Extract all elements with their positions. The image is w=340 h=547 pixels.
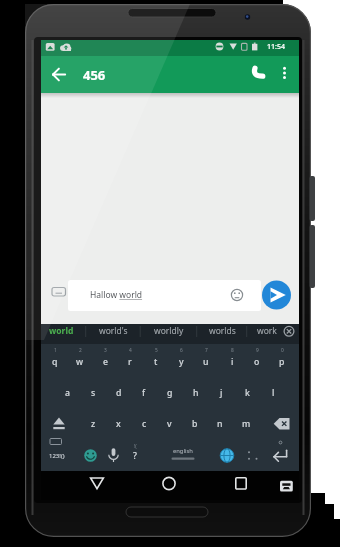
staticText: !( [134, 443, 137, 450]
button[interactable]: k [236, 383, 258, 403]
button[interactable] [157, 471, 181, 495]
button[interactable]: p [271, 352, 293, 372]
button[interactable] [269, 444, 293, 467]
staticText: world's [99, 325, 128, 337]
staticText: v [167, 418, 172, 430]
staticText: t [154, 356, 158, 368]
button[interactable] [85, 471, 109, 495]
staticText: u [203, 356, 209, 368]
staticText: b [192, 418, 198, 430]
staticText: 9 [256, 347, 259, 354]
button[interactable]: d [108, 383, 130, 403]
button[interactable]: e [94, 352, 116, 372]
staticText: i [231, 356, 234, 368]
button[interactable]: l [262, 383, 284, 403]
button[interactable]: v [158, 414, 180, 434]
staticText: 456 [83, 66, 106, 84]
staticText: m [242, 418, 251, 430]
staticText: english [173, 447, 193, 455]
button[interactable]: a [56, 383, 78, 403]
button[interactable]: 456 [72, 65, 116, 85]
button[interactable]: r [119, 352, 141, 372]
staticText: worldly [154, 325, 184, 337]
button[interactable] [271, 411, 296, 436]
button[interactable]: n [209, 414, 231, 434]
button[interactable]: world's [91, 323, 135, 339]
button[interactable] [79, 444, 102, 467]
button[interactable]: q [44, 352, 66, 372]
staticText: a [65, 387, 70, 399]
button[interactable]: s [82, 383, 104, 403]
button[interactable]: ? [126, 448, 144, 464]
button[interactable]: Hallow world [90, 288, 170, 302]
staticText: s [91, 387, 96, 399]
button[interactable]: i [221, 352, 243, 372]
staticText: 2 [79, 347, 82, 354]
staticText: 7 [205, 347, 208, 354]
button[interactable]: z [82, 414, 104, 434]
button[interactable]: b [184, 414, 206, 434]
button[interactable]: w [69, 352, 91, 372]
staticText: 3 [104, 347, 107, 354]
button[interactable]: f [133, 383, 155, 403]
button[interactable]: 123!() [42, 450, 72, 462]
button[interactable]: j [210, 383, 232, 403]
staticText: h [193, 387, 199, 399]
button[interactable]: english [163, 445, 203, 456]
staticText: work [257, 325, 277, 337]
staticText: d [116, 387, 122, 399]
staticText: 1 [54, 347, 57, 354]
button[interactable] [102, 444, 125, 467]
button[interactable] [274, 61, 295, 85]
button[interactable] [278, 475, 295, 495]
staticText: c [142, 418, 147, 430]
staticText: e [103, 356, 108, 368]
button[interactable]: work [250, 323, 284, 339]
button[interactable]: h [185, 383, 207, 403]
button[interactable] [262, 280, 291, 310]
staticText: y [179, 356, 184, 368]
staticText: worlds [209, 325, 236, 337]
button[interactable]: x [107, 414, 129, 434]
button[interactable]: c [133, 414, 155, 434]
button[interactable] [229, 471, 253, 495]
button[interactable] [68, 280, 261, 311]
staticText: 123!() [49, 452, 65, 460]
button[interactable] [283, 324, 295, 337]
staticText: k [245, 387, 250, 399]
staticText: o [254, 356, 260, 368]
button[interactable]: m [235, 414, 257, 434]
staticText: j [220, 387, 223, 399]
staticText: q [52, 356, 58, 368]
staticText: ? [133, 450, 137, 462]
staticText: g [167, 387, 173, 399]
button[interactable]: worldly [146, 323, 192, 339]
button[interactable] [148, 444, 218, 467]
button[interactable]: worlds [201, 323, 243, 339]
button[interactable]: o [246, 352, 268, 372]
staticText: 4 [129, 347, 132, 354]
staticText: 6 [180, 347, 183, 354]
staticText: n [217, 418, 223, 430]
button[interactable] [216, 444, 238, 467]
staticText: z [91, 418, 96, 430]
button[interactable] [246, 61, 270, 85]
button[interactable]: y [170, 352, 192, 372]
button[interactable]: t [145, 352, 167, 372]
button[interactable] [228, 286, 246, 304]
staticText: 11:54 [267, 42, 285, 52]
button[interactable]: u [195, 352, 217, 372]
button[interactable] [45, 411, 69, 436]
staticText: Hallow world [90, 289, 143, 301]
staticText: l [272, 387, 275, 399]
button[interactable] [48, 64, 70, 86]
button[interactable]: g [159, 383, 181, 403]
staticText: r [128, 356, 132, 368]
staticText: 5 [155, 347, 158, 354]
staticText: x [116, 418, 121, 430]
button[interactable]: world [41, 323, 81, 339]
staticText: w [76, 356, 84, 368]
staticText: world [49, 325, 74, 337]
button[interactable] [42, 443, 71, 467]
staticText: p [279, 356, 285, 368]
